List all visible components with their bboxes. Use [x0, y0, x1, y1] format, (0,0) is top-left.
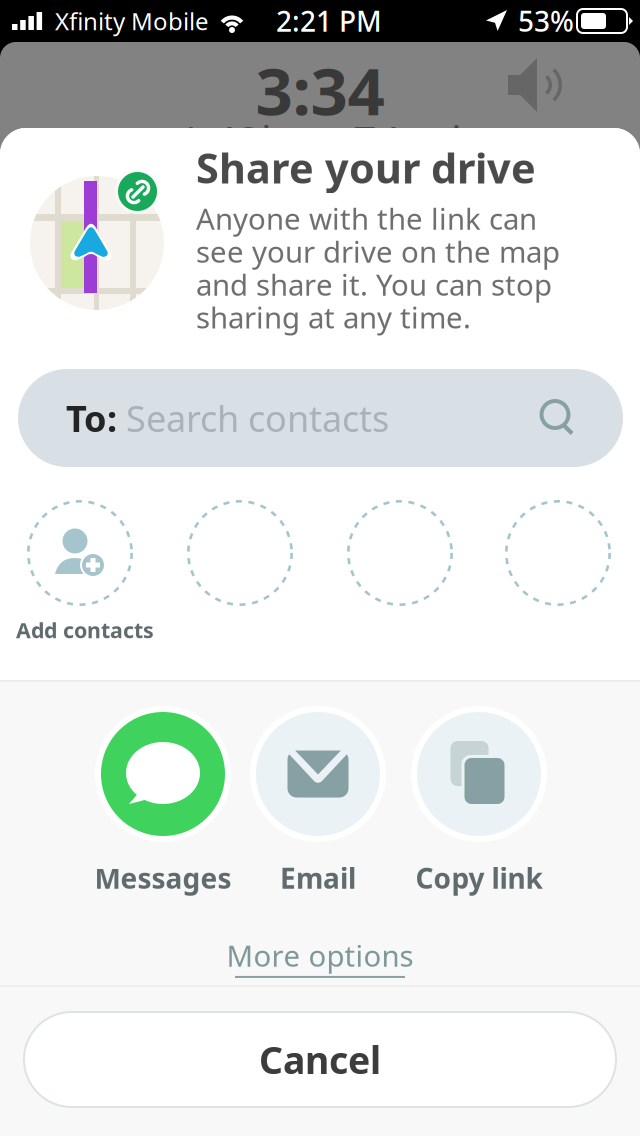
button[interactable]: Email: [230, 706, 406, 894]
staticText: 1:42h 74 mi: [178, 114, 462, 168]
staticText: Share your drive: [196, 140, 536, 195]
staticText: 2:21 PM: [276, 2, 382, 40]
staticText: Messages: [94, 859, 231, 897]
button[interactable]: Messages: [75, 706, 251, 894]
staticText: To:: [66, 394, 126, 442]
staticText: Search contacts: [126, 394, 389, 442]
button[interactable]: Add contacts: [16, 500, 196, 644]
button[interactable]: Copy link: [391, 706, 567, 894]
staticText: Copy link: [415, 859, 542, 897]
button[interactable]: More options: [0, 936, 640, 978]
staticText: Cancel: [259, 1035, 381, 1084]
staticText: Anyone with the link can see your drive …: [196, 199, 560, 337]
staticText: Add contacts: [16, 616, 154, 644]
button[interactable]: Cancel: [24, 1012, 616, 1107]
staticText: Email: [280, 859, 356, 897]
staticText: More options: [226, 936, 413, 975]
button[interactable]: To:: [18, 369, 623, 467]
staticText: 3:34: [255, 47, 384, 133]
staticText: 53%: [518, 2, 574, 40]
staticText: Xfinity Mobile: [55, 5, 209, 37]
